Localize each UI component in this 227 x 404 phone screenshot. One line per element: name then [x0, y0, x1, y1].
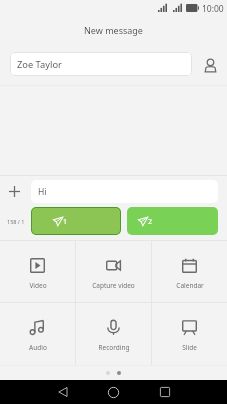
button[interactable]: Send with SIM 2: [127, 207, 218, 235]
button[interactable]: Recording: [76, 303, 151, 365]
staticText: Audio: [29, 343, 47, 352]
button[interactable]: Zoe Taylor: [10, 52, 192, 76]
staticText: New message: [84, 24, 143, 36]
button[interactable]: Audio: [0, 303, 75, 365]
staticText: Recording: [98, 343, 130, 352]
staticText: Calendar: [176, 281, 204, 290]
staticText: 10:00: [202, 3, 224, 15]
button[interactable]: Hi: [31, 180, 218, 203]
button[interactable]: Add attachment: [0, 177, 28, 205]
staticText: 158 / 1: [7, 218, 25, 225]
staticText: 2: [148, 217, 153, 227]
staticText: Capture video: [92, 281, 135, 290]
button[interactable]: Home: [101, 380, 126, 404]
button[interactable]: Back: [50, 380, 75, 404]
staticText: Hi: [38, 186, 47, 198]
button[interactable]: Slide: [152, 303, 227, 365]
staticText: Zoe Taylor: [17, 58, 62, 71]
button[interactable]: Recent apps: [152, 380, 177, 404]
staticText: Video: [29, 281, 47, 290]
button[interactable]: Send with SIM 1: [31, 207, 121, 235]
button[interactable]: Capture video: [76, 241, 151, 303]
button[interactable]: Video: [0, 241, 75, 303]
staticText: 1: [63, 217, 68, 227]
button[interactable]: Add recipient from contacts: [196, 51, 224, 79]
staticText: Slide: [182, 343, 197, 352]
button[interactable]: Calendar: [152, 241, 227, 303]
